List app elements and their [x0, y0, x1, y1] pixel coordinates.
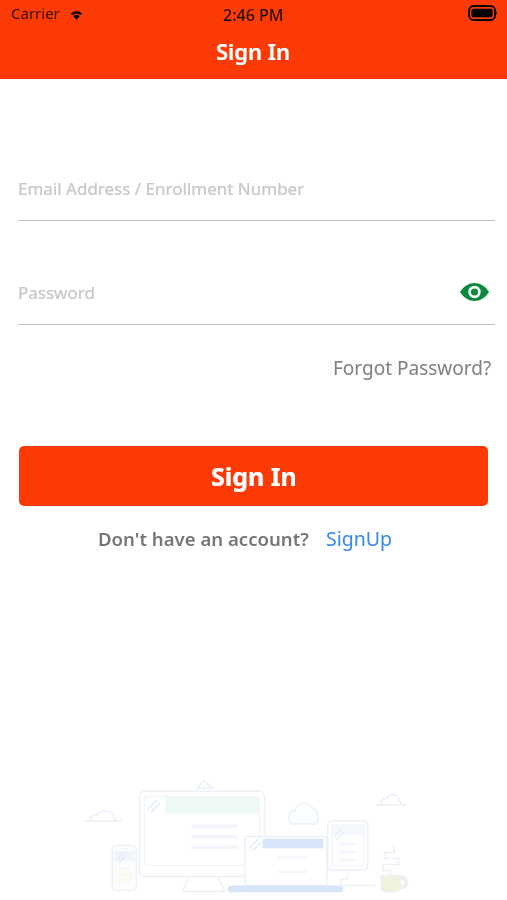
staticText: Email Address / Enrollment Number	[18, 177, 305, 200]
staticText: Sign In	[216, 36, 291, 66]
staticText: Forgot Password?	[333, 355, 492, 381]
staticText: 2:46 PM	[223, 4, 284, 26]
staticText: SignUp	[326, 525, 393, 552]
staticText: Sign In	[211, 459, 297, 493]
button[interactable]: Sign In	[19, 446, 488, 506]
staticText: Password	[18, 281, 95, 304]
staticText: Don't have an account?	[98, 526, 309, 551]
staticText: Carrier	[11, 3, 60, 23]
button[interactable]: Show password	[457, 278, 491, 306]
button[interactable]: SignUp	[320, 519, 399, 558]
button[interactable]: Forgot Password?	[329, 347, 496, 389]
